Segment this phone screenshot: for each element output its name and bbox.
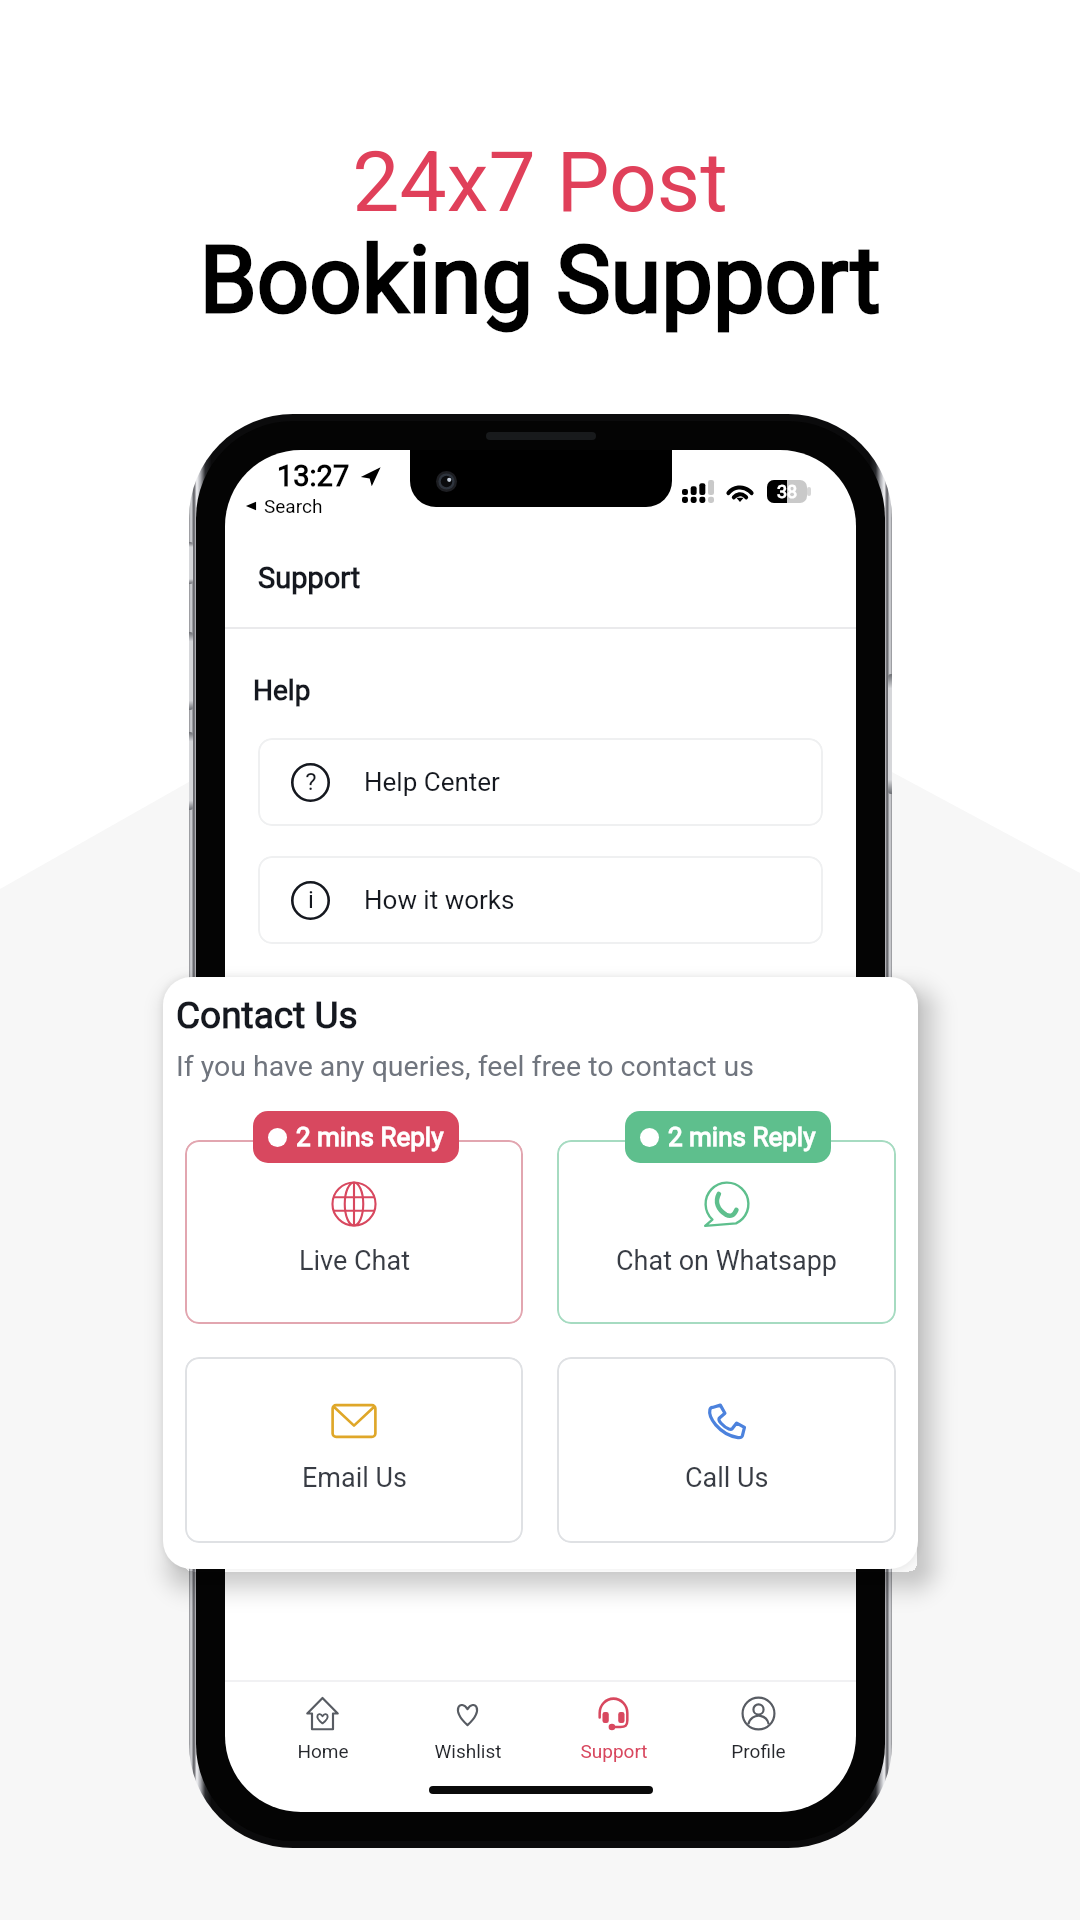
button[interactable]: 2 mins Reply bbox=[640, 1111, 816, 1163]
staticText: Support bbox=[580, 1740, 648, 1762]
staticText: Support bbox=[258, 561, 361, 595]
button[interactable]: ? bbox=[258, 738, 823, 826]
staticText: i bbox=[308, 886, 314, 914]
staticText: 2 mins Reply bbox=[668, 1122, 816, 1152]
staticText: ? bbox=[305, 768, 317, 796]
staticText: If you have any queries, feel free to co… bbox=[176, 1050, 754, 1083]
staticText: Profile bbox=[731, 1740, 786, 1762]
button[interactable]: Support bbox=[541, 1682, 686, 1762]
staticText: 13:27 bbox=[277, 459, 350, 493]
staticText: How it works bbox=[364, 885, 515, 915]
button[interactable]: Call Us bbox=[557, 1357, 896, 1543]
staticText: Help Center bbox=[364, 767, 500, 797]
staticText: Call Us bbox=[685, 1462, 769, 1494]
staticText: Email Us bbox=[302, 1462, 407, 1494]
staticText: 2 mins Reply bbox=[296, 1122, 444, 1152]
staticText: Booking Support bbox=[199, 227, 881, 335]
button[interactable]: Chat on Whatsapp bbox=[557, 1140, 896, 1324]
button[interactable]: Live Chat bbox=[185, 1140, 523, 1324]
button[interactable]: i bbox=[258, 856, 823, 944]
button[interactable]: Email Us bbox=[185, 1357, 523, 1543]
staticText: Help bbox=[253, 674, 311, 707]
button[interactable]: Profile bbox=[686, 1682, 831, 1762]
staticText: Search bbox=[264, 495, 323, 517]
staticText: Chat on Whatsapp bbox=[616, 1245, 837, 1277]
staticText: 38 bbox=[777, 481, 798, 502]
staticText: 24x7 Post bbox=[352, 133, 728, 231]
staticText: Wishlist bbox=[434, 1740, 502, 1762]
button[interactable]: Wishlist bbox=[395, 1682, 540, 1762]
button[interactable]: Home bbox=[250, 1682, 395, 1762]
button[interactable]: 2 mins Reply bbox=[268, 1111, 444, 1163]
staticText: Home bbox=[297, 1740, 349, 1762]
staticText: Contact Us bbox=[176, 994, 358, 1037]
staticText: Live Chat bbox=[299, 1245, 410, 1277]
